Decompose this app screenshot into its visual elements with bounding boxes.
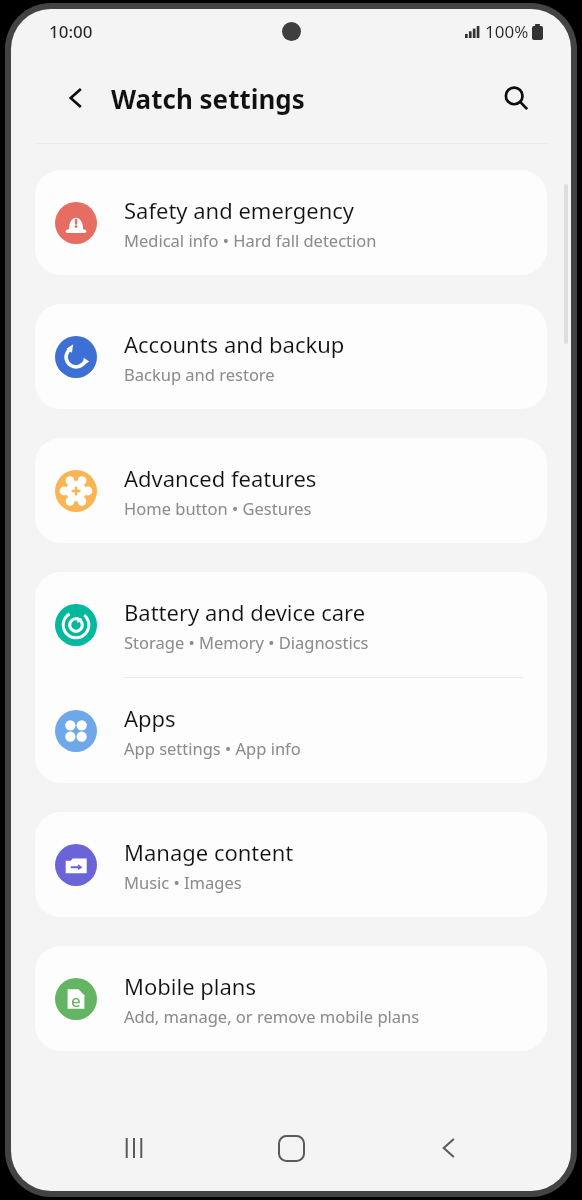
button[interactable]: Advanced features (35, 438, 547, 543)
staticText: App settings • App info (124, 737, 301, 759)
button[interactable]: Back (55, 77, 97, 119)
staticText: e (71, 989, 81, 1012)
button[interactable]: Manage content (35, 812, 547, 917)
button[interactable]: Recents (99, 1113, 169, 1183)
staticText: Backup and restore (124, 363, 275, 385)
button[interactable]: Apps (35, 678, 547, 783)
button[interactable]: Search (493, 75, 539, 121)
staticText: Advanced features (124, 463, 317, 493)
button[interactable]: Battery and device care (35, 572, 547, 677)
staticText: Mobile plans (124, 971, 256, 1001)
staticText: Apps (124, 703, 176, 733)
staticText: 10:00 (49, 20, 93, 43)
staticText: 100% (485, 20, 529, 43)
staticText: Home button • Gestures (124, 497, 312, 519)
button[interactable]: Safety and emergency (35, 170, 547, 275)
staticText: Medical info • Hard fall detection (124, 229, 377, 251)
button[interactable]: e (35, 946, 547, 1051)
staticText: Battery and device care (124, 597, 366, 627)
button[interactable]: Back (414, 1113, 484, 1183)
staticText: Manage content (124, 837, 294, 867)
staticText: Safety and emergency (124, 195, 355, 225)
staticText: Add, manage, or remove mobile plans (124, 1005, 420, 1027)
staticText: Music • Images (124, 871, 242, 893)
button[interactable]: Accounts and backup (35, 304, 547, 409)
staticText: Accounts and backup (124, 329, 345, 359)
staticText: Storage • Memory • Diagnostics (124, 631, 369, 653)
button[interactable]: Home (256, 1113, 326, 1183)
staticText: Watch settings (111, 81, 305, 116)
